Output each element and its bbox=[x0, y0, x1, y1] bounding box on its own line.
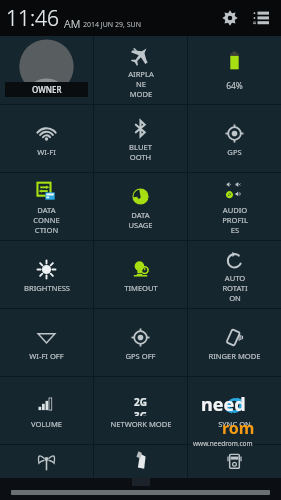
staticText: 2014 JUN 29, SUN bbox=[83, 20, 141, 30]
staticText: SYNC ON bbox=[218, 419, 251, 429]
button[interactable]: Flashlight bbox=[94, 445, 187, 478]
staticText: AM bbox=[64, 16, 81, 31]
staticText: BLUET OOTH bbox=[129, 142, 152, 162]
staticText: BRIGHTNESS bbox=[24, 283, 70, 293]
staticText: GPS OFF bbox=[125, 351, 156, 361]
staticText: 3G bbox=[134, 409, 147, 416]
button[interactable]: VOLUME bbox=[0, 377, 93, 444]
staticText: OWNER bbox=[32, 84, 62, 95]
staticText: GPS bbox=[227, 147, 242, 157]
button[interactable]: WI-FI OFF bbox=[0, 309, 93, 376]
staticText: TIMEOUT bbox=[124, 283, 158, 293]
button[interactable]: GPS OFF bbox=[94, 309, 187, 376]
button[interactable]: DATA CONNE CTION bbox=[0, 173, 93, 240]
button[interactable]: SYNC ON bbox=[188, 377, 281, 444]
staticText: AIRPLA NE MODE bbox=[128, 69, 154, 99]
button[interactable]: Mobile hotspot bbox=[0, 445, 93, 478]
staticText: DATA CONNE CTION bbox=[33, 205, 60, 235]
button[interactable]: AUDIO PROFIL ES bbox=[188, 173, 281, 240]
button[interactable]: WI-FI bbox=[0, 105, 93, 172]
staticText: WI-FI OFF bbox=[29, 351, 64, 361]
button[interactable]: AUTO ROTATI ON bbox=[188, 241, 281, 308]
button[interactable]: DATA USAGE bbox=[94, 173, 187, 240]
button[interactable]: BLUET OOTH bbox=[94, 105, 187, 172]
button[interactable]: Notification list bbox=[248, 5, 274, 31]
staticText: 11:46 bbox=[6, 4, 60, 33]
button[interactable]: 2G bbox=[94, 377, 187, 444]
staticText: need bbox=[201, 392, 246, 417]
staticText: VOLUME bbox=[31, 419, 62, 429]
button[interactable]: GPS bbox=[188, 105, 281, 172]
staticText: NETWORK MODE bbox=[110, 419, 172, 429]
staticText: DATA USAGE bbox=[128, 210, 153, 230]
staticText: 2G bbox=[134, 395, 147, 409]
button[interactable]: RINGER MODE bbox=[188, 309, 281, 376]
staticText: AUTO ROTATI ON bbox=[222, 273, 248, 303]
button[interactable]: Owner profile bbox=[0, 36, 93, 104]
button[interactable]: Screen capture bbox=[188, 445, 281, 478]
button[interactable]: AIRPLA NE MODE bbox=[94, 36, 187, 104]
staticText: 64% bbox=[226, 80, 243, 91]
staticText: rom bbox=[222, 417, 255, 439]
staticText: WI-FI bbox=[37, 147, 56, 157]
button[interactable]: Settings bbox=[217, 5, 243, 31]
staticText: www.needrom.com bbox=[193, 439, 253, 448]
staticText: AUDIO PROFIL ES bbox=[222, 205, 248, 235]
button[interactable]: Battery 64 percent bbox=[188, 36, 281, 104]
staticText: RINGER MODE bbox=[208, 351, 261, 361]
button[interactable]: TIMEOUT bbox=[94, 241, 187, 308]
button[interactable]: BRIGHTNESS bbox=[0, 241, 93, 308]
